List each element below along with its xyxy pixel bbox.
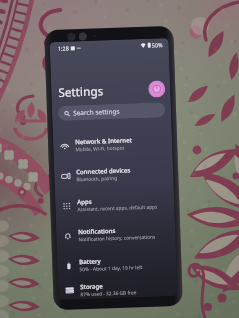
staticText: Search settings: [73, 107, 120, 117]
staticText: Assistant, recent apps, default apps: [77, 203, 157, 213]
button[interactable]: Account: [148, 80, 166, 98]
staticText: 1:28: [58, 44, 69, 52]
staticText: 50%: [152, 41, 163, 49]
button[interactable]: Network & Internet: [53, 127, 173, 161]
button[interactable]: Battery: [57, 247, 177, 281]
staticText: Battery: [79, 256, 101, 265]
staticText: Notification history, conversations: [78, 234, 156, 243]
button[interactable]: Search settings: [58, 102, 165, 121]
staticText: Storage: [80, 281, 103, 290]
staticText: Connected devices: [76, 165, 131, 175]
button[interactable]: Notifications: [56, 217, 176, 251]
staticText: 87% used - 32.36 GB free: [80, 289, 136, 298]
staticText: Network & Internet: [75, 135, 132, 145]
staticText: Bluetooth, pairing: [76, 175, 117, 183]
staticText: 50% - About 1 day, 19 hr left: [79, 264, 144, 273]
staticText: Settings: [58, 82, 103, 100]
button[interactable]: Connected devices: [54, 157, 174, 191]
staticText: Mobile, Wi-Fi, hotspot: [75, 145, 124, 153]
staticText: Apps: [77, 197, 92, 205]
button[interactable]: Apps: [55, 187, 175, 221]
staticText: Notifications: [78, 226, 116, 235]
button[interactable]: Storage: [58, 277, 177, 300]
